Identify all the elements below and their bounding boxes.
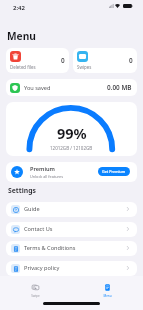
staticText: Contact Us: [24, 225, 53, 233]
staticText: Swipes: [77, 64, 92, 70]
button[interactable]: Guide: [6, 202, 137, 217]
staticText: Premium: [30, 165, 55, 173]
button[interactable]: Terms & Conditions: [6, 241, 137, 256]
button[interactable]: Premium: [6, 162, 137, 182]
staticText: Swipe: [31, 294, 40, 298]
button[interactable]: Get Premium: [98, 167, 130, 176]
staticText: Get Premium: [102, 169, 126, 174]
button[interactable]: You saved: [6, 79, 137, 96]
button[interactable]: Privacy policy: [6, 261, 137, 276]
staticText: Settings: [8, 186, 36, 195]
staticText: 0: [61, 56, 65, 65]
staticText: 0.00 MB: [107, 83, 132, 92]
staticText: Menu: [7, 29, 36, 43]
staticText: 0: [129, 56, 133, 65]
button[interactable]: Swipe: [0, 276, 71, 300]
staticText: Menu: [103, 294, 112, 298]
button[interactable]: Deleted files: [6, 48, 69, 73]
staticText: 99%: [57, 123, 87, 143]
button[interactable]: Menu: [71, 276, 143, 300]
staticText: You saved: [24, 84, 51, 92]
staticText: 12012GB / 12102GB: [50, 145, 93, 151]
staticText: Privacy policy: [24, 264, 60, 272]
staticText: Terms & Conditions: [24, 244, 76, 252]
button[interactable]: Swipes: [73, 48, 137, 73]
staticText: Deleted files: [10, 64, 36, 70]
button[interactable]: Contact Us: [6, 222, 137, 237]
staticText: Unlock all features: [30, 174, 64, 179]
staticText: 2:42: [13, 4, 25, 12]
staticText: Guide: [24, 205, 40, 213]
